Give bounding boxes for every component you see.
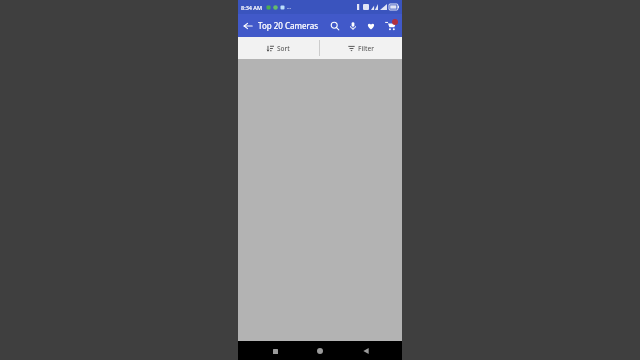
staticText: Sort [277,44,290,53]
button[interactable]: Voice search [344,14,362,37]
button[interactable]: Cart [380,14,400,37]
button[interactable]: Home [311,342,329,360]
button[interactable]: Search [326,14,344,37]
button[interactable]: Favorites [362,14,380,37]
staticText: 8:34 AM [241,4,263,11]
button[interactable]: Sort [238,37,319,59]
button[interactable]: Recent apps [266,342,284,360]
button[interactable]: Back [357,342,375,360]
staticText: Filter [358,44,374,53]
staticText: ... [287,4,292,11]
button[interactable]: Back [238,14,258,37]
button[interactable]: Filter [320,37,402,59]
button[interactable]: Top 20 Cameras [258,20,318,31]
